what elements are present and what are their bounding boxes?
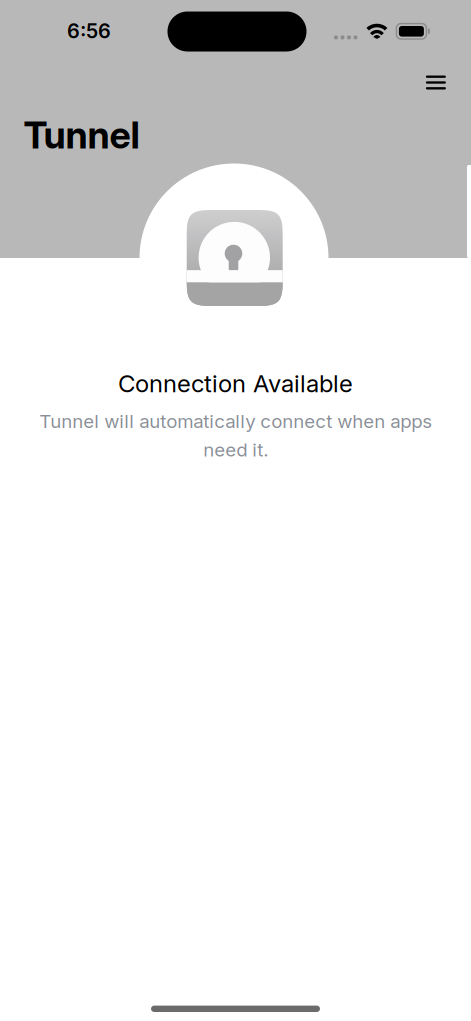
staticText: Connection Available [118, 369, 353, 398]
button[interactable]: Menu [412, 63, 460, 102]
staticText: Tunnel [23, 112, 139, 158]
staticText: 6:56 [67, 19, 111, 43]
staticText: Tunnel will automatically connect when a… [39, 410, 432, 461]
